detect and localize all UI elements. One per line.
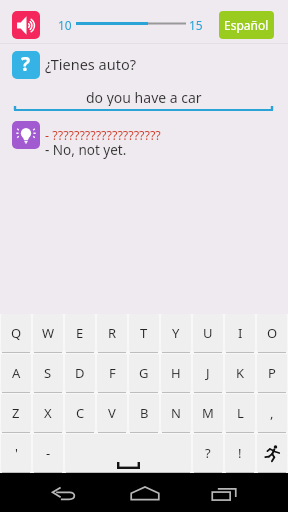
staticText: Y (172, 324, 180, 342)
staticText: L (237, 404, 244, 422)
staticText: 15 (189, 17, 203, 33)
button[interactable]: N (160, 394, 192, 432)
button[interactable]: Home (122, 473, 168, 512)
staticText: R (108, 324, 117, 342)
staticText: - ???????????????????? (45, 127, 161, 144)
staticText: T (140, 324, 148, 342)
button[interactable]: J (192, 354, 224, 392)
staticText: - No, not yet. (45, 141, 127, 159)
button[interactable]: F (96, 354, 128, 392)
button[interactable]: S (32, 354, 64, 392)
staticText: U (203, 324, 213, 342)
button[interactable]: P (256, 354, 288, 392)
button[interactable]: T (128, 314, 160, 352)
button[interactable]: ' (0, 434, 32, 472)
staticText: V (108, 404, 116, 422)
staticText: A (12, 364, 21, 382)
staticText: J (206, 364, 210, 382)
button[interactable]: B (128, 394, 160, 432)
staticText: C (76, 404, 85, 422)
button[interactable]: H (160, 354, 192, 392)
staticText: Español (224, 17, 269, 33)
staticText: ' (15, 444, 18, 462)
staticText: Q (11, 324, 22, 342)
button[interactable]: Español (219, 11, 274, 39)
staticText: I (238, 324, 243, 342)
button[interactable]: I (224, 314, 256, 352)
button[interactable]: O (256, 314, 288, 352)
button[interactable]: Space (64, 434, 192, 472)
staticText: P (268, 364, 276, 382)
button[interactable]: U (192, 314, 224, 352)
staticText: Z (12, 404, 20, 422)
button[interactable]: Z (0, 394, 32, 432)
staticText: ? (21, 51, 31, 77)
staticText: X (44, 404, 52, 422)
button[interactable]: Recent apps (201, 474, 247, 512)
button[interactable]: V (96, 394, 128, 432)
staticText: G (139, 364, 149, 382)
staticText: O (267, 324, 278, 342)
staticText: do you have a car (86, 88, 202, 106)
button[interactable]: A (0, 354, 32, 392)
staticText: S (44, 364, 52, 382)
button[interactable]: Back (41, 474, 87, 512)
button[interactable]: D (64, 354, 96, 392)
button[interactable]: Go (256, 434, 288, 472)
button[interactable]: - (32, 434, 64, 472)
staticText: ! (238, 444, 242, 462)
staticText: H (171, 364, 181, 382)
staticText: ¿Tienes auto? (45, 54, 136, 74)
staticText: F (109, 364, 116, 382)
staticText: K (236, 364, 245, 382)
button[interactable]: K (224, 354, 256, 392)
button[interactable]: Q (0, 314, 32, 352)
staticText: , (270, 404, 274, 422)
button[interactable]: Play audio (12, 11, 40, 39)
button[interactable]: ? (192, 434, 224, 472)
staticText: N (171, 404, 181, 422)
staticText: W (42, 324, 55, 342)
staticText: 10 (58, 17, 72, 33)
staticText: E (76, 324, 84, 342)
button[interactable]: ! (224, 434, 256, 472)
button[interactable]: L (224, 394, 256, 432)
button[interactable]: G (128, 354, 160, 392)
staticText: ? (205, 444, 211, 462)
button[interactable]: M (192, 394, 224, 432)
button[interactable]: W (32, 314, 64, 352)
button[interactable]: C (64, 394, 96, 432)
button[interactable]: Y (160, 314, 192, 352)
button[interactable]: Hint (12, 121, 40, 149)
staticText: - (46, 444, 51, 462)
button[interactable]: X (32, 394, 64, 432)
button[interactable]: E (64, 314, 96, 352)
button[interactable]: Show question (12, 51, 40, 79)
button[interactable]: , (256, 394, 288, 432)
button[interactable]: R (96, 314, 128, 352)
staticText: D (75, 364, 85, 382)
staticText: M (202, 404, 214, 422)
staticText: B (140, 404, 149, 422)
